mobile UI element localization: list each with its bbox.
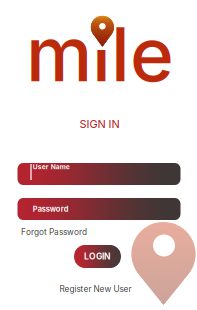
staticText: Forgot Password: [21, 227, 87, 237]
button[interactable]: Register New User: [58, 283, 133, 295]
staticText: mile: [26, 9, 174, 99]
staticText: Register New User: [59, 284, 131, 294]
staticText: User Name: [33, 163, 70, 171]
staticText: LOGIN: [84, 251, 111, 262]
staticText: SIGN IN: [79, 117, 119, 131]
button[interactable]: LOGIN: [74, 245, 121, 268]
staticText: Password: [33, 204, 69, 213]
button[interactable]: Forgot Password: [20, 226, 88, 238]
button[interactable]: Password: [17, 198, 180, 220]
button[interactable]: User Name: [17, 163, 180, 185]
